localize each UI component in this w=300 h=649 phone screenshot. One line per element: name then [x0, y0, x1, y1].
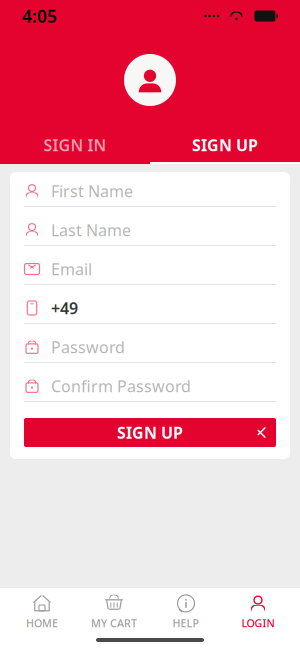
staticText: Email	[51, 258, 92, 280]
button[interactable]: MY CART	[78, 590, 150, 634]
button[interactable]: LOGIN	[222, 590, 294, 634]
staticText: SIGN UP	[192, 134, 258, 156]
staticText: HELP	[172, 616, 199, 630]
button[interactable]: SIGN IN	[0, 128, 150, 162]
staticText: HOME	[26, 616, 58, 630]
staticText: Password	[51, 336, 125, 358]
staticText: SIGN UP	[117, 422, 183, 443]
staticText: MY CART	[91, 616, 137, 630]
button[interactable]: HELP	[150, 590, 222, 634]
button[interactable]: SIGN UP	[24, 418, 276, 447]
staticText: SIGN IN	[43, 134, 106, 156]
staticText: Confirm Password	[51, 375, 191, 397]
button[interactable]: SIGN UP	[150, 128, 300, 162]
staticText: 4:05	[22, 4, 57, 27]
staticText: Last Name	[51, 219, 131, 241]
staticText: First Name	[51, 180, 133, 202]
staticText: LOGIN	[241, 616, 274, 630]
staticText: +49	[51, 297, 78, 319]
button[interactable]: HOME	[6, 590, 78, 634]
